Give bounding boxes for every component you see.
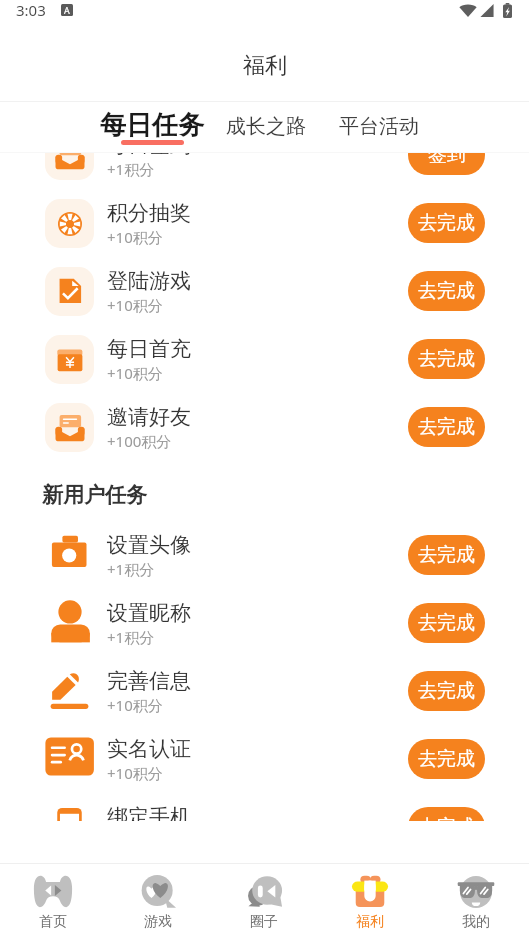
button[interactable]: 首页 bbox=[0, 864, 105, 942]
button[interactable]: 绑定手机 bbox=[0, 793, 529, 821]
button[interactable]: 签到 bbox=[408, 153, 485, 175]
button[interactable]: 圈子 bbox=[211, 864, 317, 942]
button[interactable]: 设置头像 bbox=[0, 521, 529, 589]
staticText: 成长之路 bbox=[226, 114, 306, 139]
button[interactable]: 去完成 bbox=[408, 807, 485, 821]
staticText: 积分抽奖 bbox=[107, 200, 191, 226]
staticText: 去完成 bbox=[418, 815, 475, 821]
staticText: 去完成 bbox=[418, 415, 475, 439]
staticText: 去完成 bbox=[418, 611, 475, 635]
button[interactable]: 去完成 bbox=[408, 535, 485, 575]
button[interactable]: 去完成 bbox=[408, 739, 485, 779]
staticText: 去完成 bbox=[418, 347, 475, 371]
staticText: 每日任务 bbox=[100, 109, 204, 142]
staticText: 我的 bbox=[462, 913, 490, 931]
button[interactable]: 去完成 bbox=[408, 671, 485, 711]
staticText: 设置昵称 bbox=[107, 600, 191, 626]
staticText: 圈子 bbox=[250, 913, 278, 931]
staticText: 首页 bbox=[39, 913, 67, 931]
button[interactable]: 积分抽奖 bbox=[0, 189, 529, 257]
staticText: 每日首充 bbox=[107, 336, 191, 362]
staticText: 游戏 bbox=[144, 913, 172, 931]
staticText: A bbox=[64, 4, 70, 16]
staticText: 登陆游戏 bbox=[107, 268, 191, 294]
staticText: 每日签到 bbox=[107, 153, 191, 158]
button[interactable]: 每日首充 bbox=[0, 325, 529, 393]
staticText: 绑定手机 bbox=[107, 804, 191, 821]
staticText: +10积分 bbox=[107, 295, 163, 315]
button[interactable]: 去完成 bbox=[408, 203, 485, 243]
staticText: 福利 bbox=[243, 52, 287, 80]
staticText: 邀请好友 bbox=[107, 404, 191, 430]
button[interactable]: 实名认证 bbox=[0, 725, 529, 793]
staticText: +10积分 bbox=[107, 763, 163, 783]
button[interactable]: 我的 bbox=[423, 864, 529, 942]
button[interactable]: 去完成 bbox=[408, 271, 485, 311]
button[interactable]: 成长之路 bbox=[226, 102, 306, 139]
staticText: +100积分 bbox=[107, 431, 172, 451]
button[interactable]: 平台活动 bbox=[339, 102, 419, 139]
staticText: +1积分 bbox=[107, 559, 155, 579]
staticText: 完善信息 bbox=[107, 668, 191, 694]
staticText: 去完成 bbox=[418, 543, 475, 567]
button[interactable]: 游戏 bbox=[105, 864, 211, 942]
staticText: 实名认证 bbox=[107, 736, 191, 762]
staticText: 3:03 bbox=[16, 0, 46, 20]
staticText: +1积分 bbox=[107, 627, 155, 647]
button[interactable]: 设置昵称 bbox=[0, 589, 529, 657]
button[interactable]: 每日任务 bbox=[100, 102, 204, 147]
staticText: 新用户任务 bbox=[42, 482, 147, 508]
button[interactable]: 去完成 bbox=[408, 407, 485, 447]
staticText: +10积分 bbox=[107, 695, 163, 715]
staticText: 去完成 bbox=[418, 279, 475, 303]
staticText: 去完成 bbox=[418, 679, 475, 703]
button[interactable]: 去完成 bbox=[408, 603, 485, 643]
button[interactable]: 邀请好友 bbox=[0, 393, 529, 461]
staticText: 平台活动 bbox=[339, 114, 419, 139]
button[interactable]: 登陆游戏 bbox=[0, 257, 529, 325]
staticText: +10积分 bbox=[107, 227, 163, 247]
staticText: +10积分 bbox=[107, 363, 163, 383]
staticText: 去完成 bbox=[418, 747, 475, 771]
staticText: +1积分 bbox=[107, 159, 155, 179]
button[interactable]: 完善信息 bbox=[0, 657, 529, 725]
staticText: 设置头像 bbox=[107, 532, 191, 558]
button[interactable]: 福利 bbox=[317, 864, 423, 942]
staticText: 去完成 bbox=[418, 211, 475, 235]
staticText: 福利 bbox=[356, 913, 384, 931]
staticText: 签到 bbox=[428, 153, 466, 167]
button[interactable]: 每日签到 bbox=[0, 153, 529, 189]
button[interactable]: 去完成 bbox=[408, 339, 485, 379]
